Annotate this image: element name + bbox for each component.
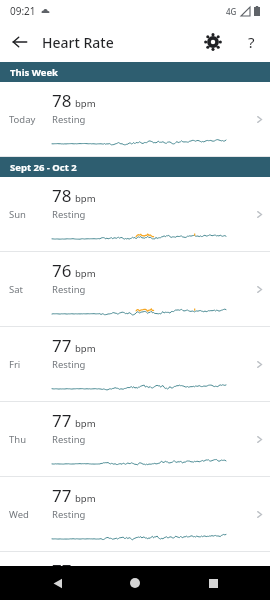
button[interactable]: Home xyxy=(115,566,155,600)
button[interactable]: Sat xyxy=(0,252,270,327)
button[interactable]: Wed xyxy=(0,477,270,552)
staticText: 78 xyxy=(52,184,72,207)
staticText: 77 xyxy=(52,559,72,566)
button[interactable]: Thu xyxy=(0,402,270,477)
staticText: Resting xyxy=(52,208,86,221)
button[interactable]: Back xyxy=(38,566,78,600)
staticText: Resting xyxy=(52,358,86,371)
staticText: 09:21 xyxy=(10,4,36,18)
staticText: Wed xyxy=(9,508,29,521)
staticText: 77 xyxy=(52,334,72,357)
staticText: Sept 26 - Oct 2 xyxy=(10,161,77,174)
staticText: ? xyxy=(248,32,255,52)
button[interactable]: Settings xyxy=(194,23,232,61)
staticText: bpm xyxy=(75,267,96,280)
staticText: Resting xyxy=(52,433,86,446)
staticText: bpm xyxy=(75,492,96,505)
staticText: Sun xyxy=(9,208,26,221)
staticText: bpm xyxy=(75,342,96,355)
staticText: 76 xyxy=(52,259,72,282)
staticText: bpm xyxy=(75,192,96,205)
staticText: Today xyxy=(9,113,36,126)
staticText: Resting xyxy=(52,283,86,296)
staticText: Thu xyxy=(9,433,27,446)
staticText: Resting xyxy=(52,508,86,521)
staticText: This Week xyxy=(10,66,58,79)
staticText: bpm xyxy=(75,417,96,430)
staticText: 77 xyxy=(52,484,72,507)
staticText: Resting xyxy=(52,113,86,126)
staticText: 4G xyxy=(226,6,237,17)
button[interactable]: Fri xyxy=(0,327,270,402)
staticText: Heart Rate xyxy=(42,33,114,52)
button[interactable]: Tue xyxy=(0,552,270,566)
staticText: 77 xyxy=(52,409,72,432)
staticText: Fri xyxy=(9,358,21,371)
button[interactable]: Sun xyxy=(0,177,270,252)
button[interactable]: Today xyxy=(0,82,270,157)
button[interactable]: Recent apps xyxy=(193,566,233,600)
staticText: 78 xyxy=(52,89,72,112)
staticText: bpm xyxy=(75,97,96,110)
button[interactable]: Back xyxy=(0,22,40,62)
staticText: Sat xyxy=(9,283,23,296)
button[interactable]: Help xyxy=(232,23,270,61)
